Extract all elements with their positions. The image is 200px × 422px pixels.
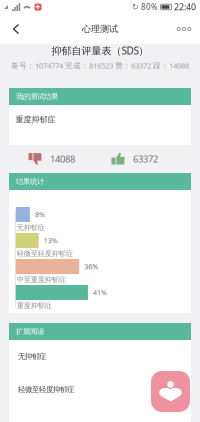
staticText: 无抑郁症 [18, 352, 46, 361]
button[interactable]: 无抑郁症 [9, 340, 191, 373]
button[interactable]: 14088 [28, 151, 75, 166]
staticText: 心理测试 [82, 23, 118, 35]
staticText: 13% [44, 236, 58, 245]
button[interactable]: 63372 [111, 151, 158, 166]
staticText: 14088 [50, 153, 75, 165]
button[interactable]: Back [3, 17, 29, 41]
button[interactable]: 轻微至轻度抑郁症 [9, 373, 191, 406]
staticText: 轻微至轻度抑郁症 [17, 249, 73, 258]
staticText: 80% [141, 2, 158, 12]
staticText: 重度抑郁症 [15, 114, 55, 125]
staticText: 重度抑郁症 [17, 301, 52, 310]
staticText: 无抑郁症 [17, 223, 45, 232]
staticText: 轻微至轻度抑郁症 [18, 385, 74, 394]
staticText: 卷号：1074774 完成：816523 赞：63372 踩：14088 [11, 60, 189, 71]
button[interactable]: More [171, 17, 197, 41]
staticText: 8% [35, 210, 45, 219]
button[interactable]: Counseling [151, 371, 190, 412]
staticText: 63372 [133, 153, 158, 165]
staticText: 36% [84, 262, 98, 271]
staticText: 抑郁自评量表（SDS） [51, 44, 148, 57]
staticText: 扩展阅读 [16, 327, 44, 336]
staticText: 41% [93, 288, 107, 297]
staticText: ↻ [132, 2, 139, 12]
staticText: 22:40 [174, 1, 196, 13]
staticText: 我的测试结果 [16, 92, 58, 101]
staticText: 中至重度抑郁症 [17, 275, 66, 284]
staticText: 结果统计 [16, 177, 44, 186]
